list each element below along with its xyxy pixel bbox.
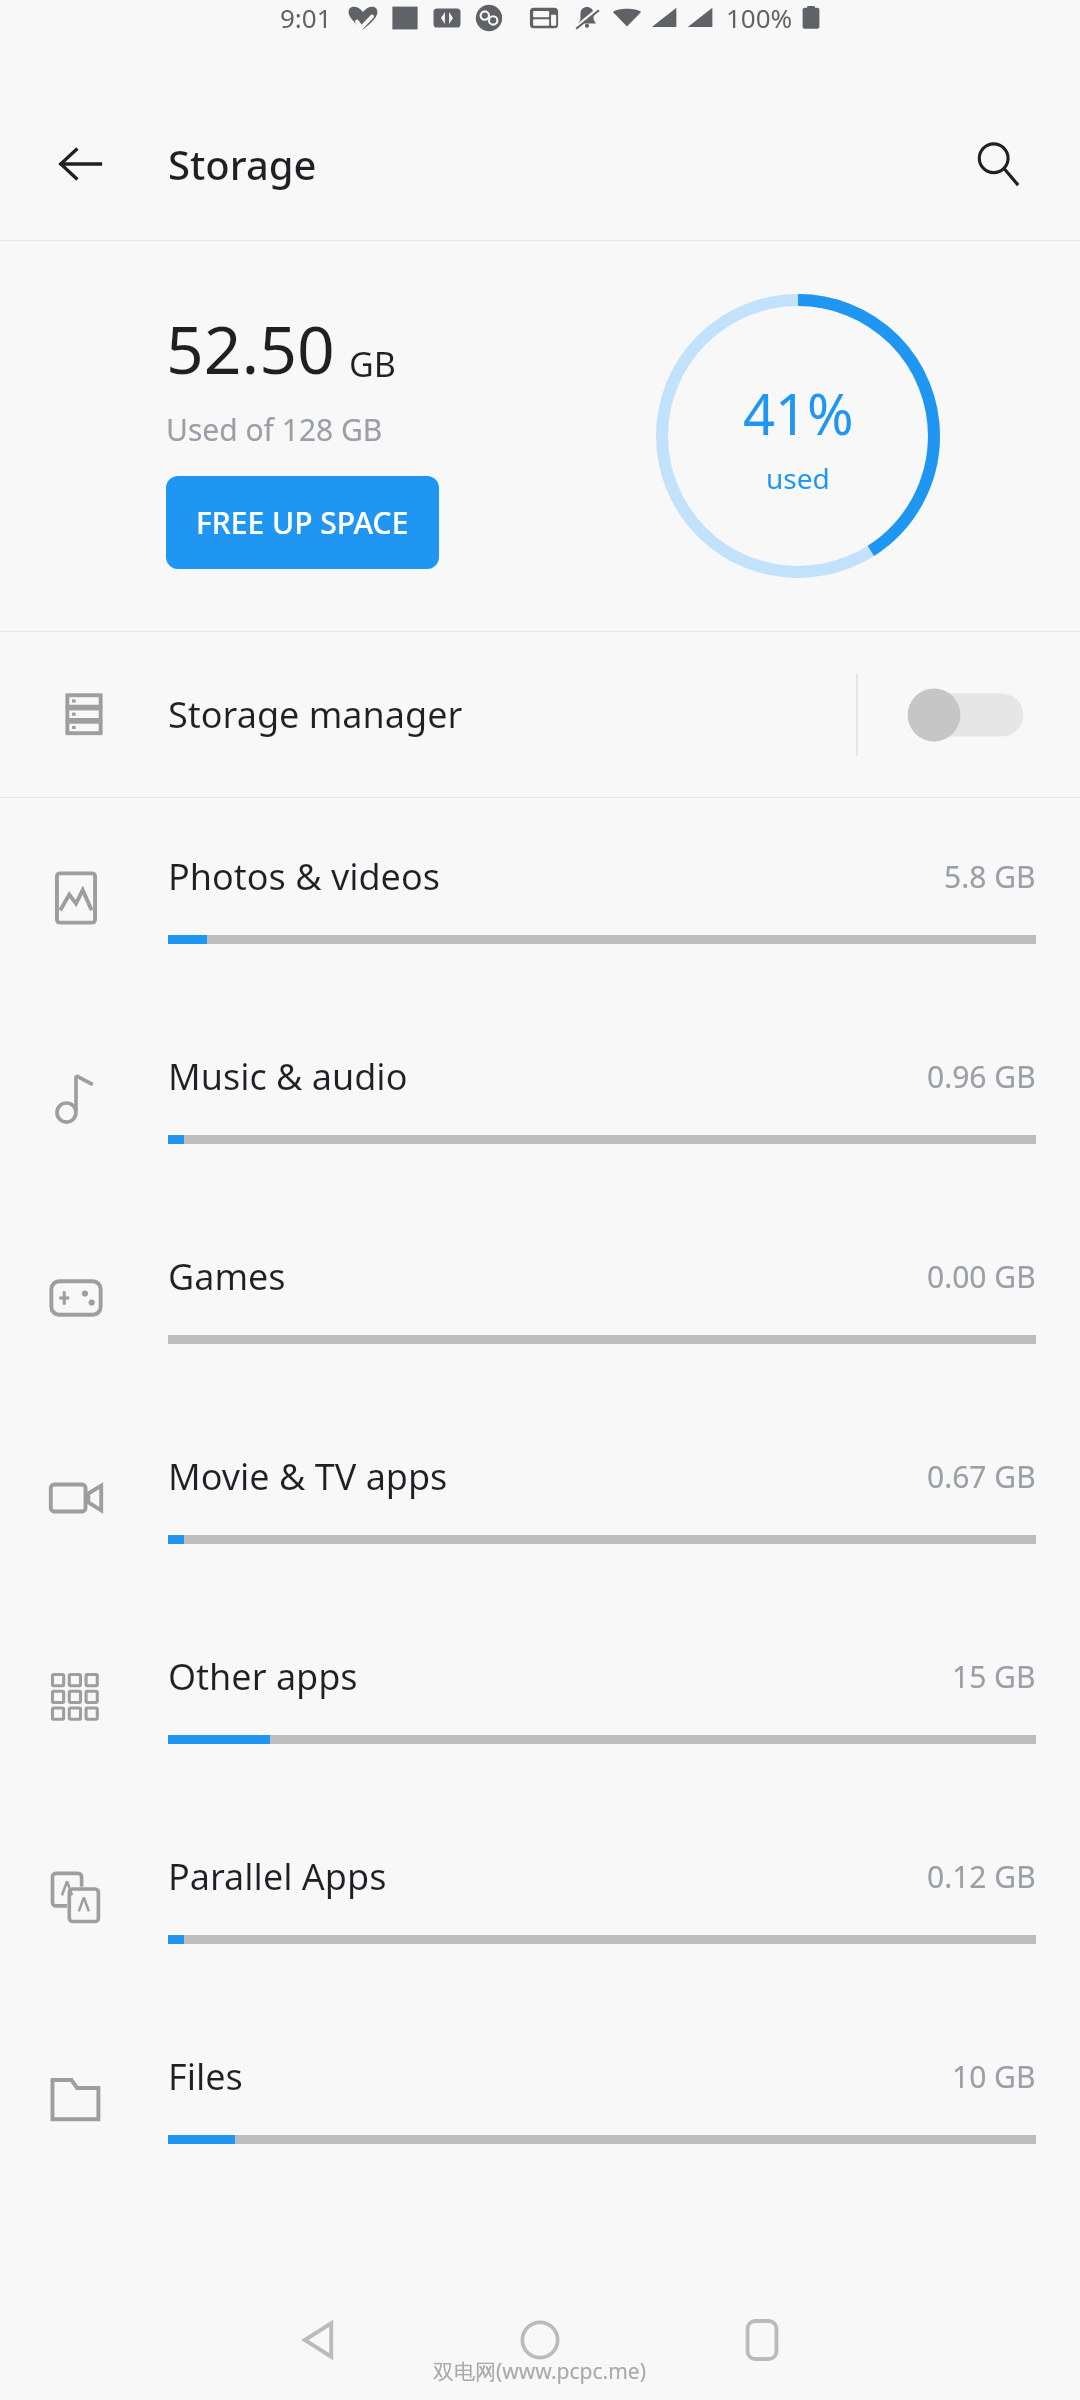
staticText: Other apps <box>168 1652 358 1701</box>
staticText: 10 GB <box>952 2056 1036 2097</box>
staticText: 0.96 GB <box>927 1056 1036 1097</box>
button[interactable]: FREE UP SPACE <box>166 476 439 569</box>
staticText: 0.00 GB <box>927 1256 1036 1297</box>
staticText: Used of 128 GB <box>166 409 383 450</box>
button[interactable]: Storage manager <box>0 632 1080 797</box>
button[interactable]: Games <box>0 1198 1080 1398</box>
staticText: 9:01 <box>280 0 332 35</box>
staticText: Storage manager <box>168 690 463 739</box>
staticText: 0.67 GB <box>927 1456 1036 1497</box>
staticText: Photos & videos <box>168 852 440 901</box>
button[interactable]: Movie & TV apps <box>0 1398 1080 1598</box>
staticText: 15 GB <box>952 1656 1036 1697</box>
staticText: 5.8 GB <box>944 856 1036 897</box>
button[interactable]: Files <box>0 1998 1080 2198</box>
button[interactable]: Other apps <box>0 1598 1080 1798</box>
staticText: FREE UP SPACE <box>196 502 409 543</box>
staticText: 100% <box>726 0 793 35</box>
button[interactable]: Search <box>958 124 1038 204</box>
button[interactable]: Back <box>270 2292 366 2388</box>
staticText: used <box>766 459 830 497</box>
button[interactable]: Storage manager toggle <box>858 632 1080 797</box>
staticText: 0.12 GB <box>927 1856 1036 1897</box>
button[interactable]: Home <box>492 2292 588 2388</box>
staticText: Parallel Apps <box>168 1852 387 1901</box>
staticText: Movie & TV apps <box>168 1452 448 1501</box>
staticText: GB <box>349 341 396 387</box>
staticText: Storage <box>168 137 317 191</box>
staticText: 41% <box>743 375 854 451</box>
staticText: 双电网(www.pcpc.me) <box>433 2357 647 2386</box>
staticText: Games <box>168 1252 286 1301</box>
button[interactable]: Music & audio <box>0 998 1080 1198</box>
staticText: 52.50 <box>166 303 335 393</box>
staticText: Files <box>168 2052 243 2101</box>
button[interactable]: Parallel Apps <box>0 1798 1080 1998</box>
button[interactable]: Recents <box>714 2292 810 2388</box>
staticText: Music & audio <box>168 1052 408 1101</box>
button[interactable]: Photos & videos <box>0 798 1080 998</box>
button[interactable]: Back <box>42 125 120 203</box>
